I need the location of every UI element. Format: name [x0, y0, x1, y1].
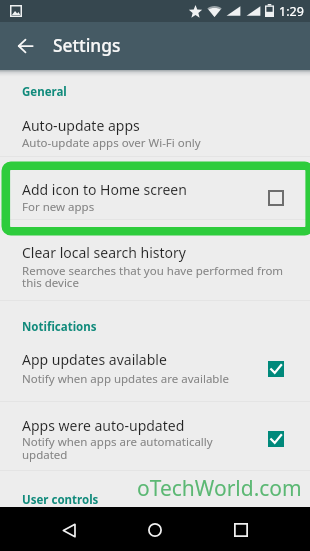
button[interactable]: User controls [0, 483, 310, 507]
staticText: App updates available [22, 350, 167, 369]
button[interactable]: General [0, 75, 310, 99]
button[interactable]: Clear local search history [0, 233, 310, 298]
staticText: Apps were auto-updated [22, 416, 185, 435]
staticText: this device [22, 275, 79, 291]
button[interactable]: Back [49, 510, 89, 550]
staticText: Notifications [22, 319, 97, 335]
button[interactable]: Notifications [0, 310, 310, 334]
button[interactable]: Auto-update apps [0, 106, 310, 158]
staticText: Add icon to Home screen [22, 180, 187, 199]
button[interactable]: Recent apps [221, 510, 261, 550]
staticText: Auto-update apps [22, 116, 140, 135]
staticText: Clear local search history [22, 243, 186, 262]
staticText: Notify when app updates are available [22, 371, 229, 387]
staticText: General [22, 84, 67, 100]
staticText: Auto-update apps over Wi-Fi only [22, 135, 201, 151]
staticText: 1:29 [279, 3, 304, 20]
button[interactable]: Add icon to Home screen [0, 170, 310, 222]
staticText: For new apps [22, 199, 95, 215]
staticText: oTechWorld.com [137, 474, 302, 503]
staticText: User controls [22, 492, 99, 508]
staticText: updated [22, 447, 68, 463]
staticText: Settings [53, 34, 121, 58]
button[interactable]: Home [135, 510, 175, 550]
button[interactable]: Apps were auto-updated [0, 406, 310, 469]
staticText: Notify when apps are automatically [22, 434, 213, 450]
staticText: Remove searches that you have performed … [22, 263, 284, 279]
button[interactable]: Back [5, 26, 45, 66]
button[interactable]: App updates available [0, 340, 310, 394]
